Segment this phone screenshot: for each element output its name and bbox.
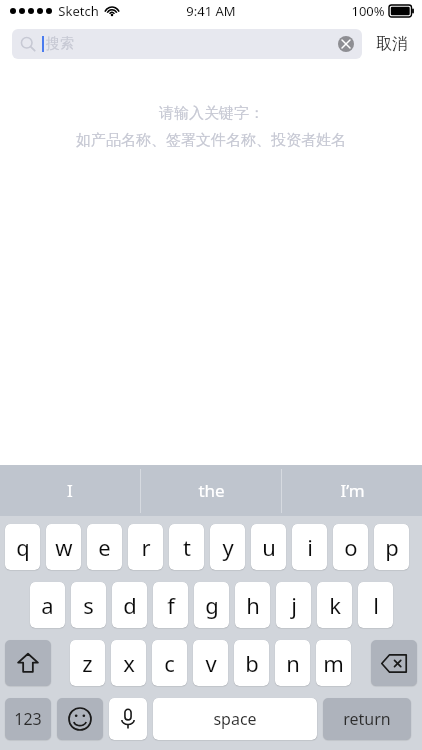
button[interactable]: m bbox=[316, 640, 351, 686]
button[interactable]: p bbox=[374, 524, 409, 570]
button[interactable]: Emoji bbox=[57, 698, 103, 740]
button[interactable]: v bbox=[193, 640, 228, 686]
staticText: n bbox=[286, 648, 300, 678]
staticText: i bbox=[307, 532, 313, 562]
staticText: j bbox=[291, 590, 297, 620]
button[interactable]: I bbox=[0, 465, 140, 516]
button[interactable]: l bbox=[358, 582, 393, 628]
button[interactable]: Clear bbox=[338, 36, 354, 52]
staticText: h bbox=[246, 590, 260, 620]
button[interactable]: Backspace bbox=[371, 640, 417, 686]
staticText: 123 bbox=[14, 708, 42, 730]
staticText: k bbox=[329, 590, 341, 620]
staticText: x bbox=[123, 648, 135, 678]
button[interactable]: o bbox=[333, 524, 368, 570]
staticText: 如产品名称、签署文件名称、投资者姓名 bbox=[76, 131, 346, 150]
button[interactable]: i bbox=[292, 524, 327, 570]
button[interactable]: g bbox=[194, 582, 229, 628]
staticText: r bbox=[141, 532, 151, 562]
button[interactable]: x bbox=[111, 640, 146, 686]
button[interactable]: the bbox=[141, 465, 281, 516]
button[interactable]: space bbox=[153, 698, 317, 740]
staticText: t bbox=[183, 532, 191, 562]
button[interactable]: k bbox=[317, 582, 352, 628]
staticText: e bbox=[98, 532, 111, 562]
staticText: u bbox=[262, 532, 276, 562]
staticText: m bbox=[323, 648, 344, 678]
button[interactable]: u bbox=[251, 524, 286, 570]
button[interactable]: b bbox=[234, 640, 269, 686]
staticText: the bbox=[198, 479, 225, 502]
staticText: c bbox=[164, 648, 175, 678]
button[interactable]: Dictation bbox=[109, 698, 147, 740]
staticText: o bbox=[344, 532, 358, 562]
staticText: v bbox=[205, 648, 217, 678]
button[interactable]: return bbox=[323, 698, 411, 740]
button[interactable]: s bbox=[71, 582, 106, 628]
staticText: space bbox=[213, 708, 257, 730]
button[interactable]: j bbox=[276, 582, 311, 628]
staticText: Sketch bbox=[58, 2, 99, 20]
staticText: y bbox=[222, 532, 234, 562]
button[interactable]: 123 bbox=[5, 698, 51, 740]
staticText: g bbox=[205, 590, 219, 620]
button[interactable]: c bbox=[152, 640, 187, 686]
button[interactable]: f bbox=[153, 582, 188, 628]
staticText: 搜索 bbox=[46, 35, 74, 53]
staticText: s bbox=[83, 590, 94, 620]
button[interactable]: w bbox=[46, 524, 81, 570]
button[interactable]: t bbox=[169, 524, 204, 570]
staticText: b bbox=[245, 648, 259, 678]
staticText: 取消 bbox=[376, 34, 408, 54]
button[interactable]: 搜索 bbox=[12, 29, 362, 59]
button[interactable]: h bbox=[235, 582, 270, 628]
button[interactable]: r bbox=[128, 524, 163, 570]
staticText: I bbox=[67, 479, 73, 502]
staticText: I’m bbox=[340, 479, 365, 502]
staticText: d bbox=[123, 590, 137, 620]
button[interactable]: a bbox=[30, 582, 65, 628]
button[interactable]: Shift bbox=[5, 640, 51, 686]
staticText: a bbox=[41, 590, 54, 620]
staticText: z bbox=[82, 648, 93, 678]
button[interactable]: q bbox=[5, 524, 40, 570]
button[interactable]: n bbox=[275, 640, 310, 686]
button[interactable]: y bbox=[210, 524, 245, 570]
button[interactable]: I’m bbox=[282, 465, 422, 516]
staticText: p bbox=[385, 532, 399, 562]
button[interactable]: z bbox=[70, 640, 105, 686]
button[interactable]: 取消 bbox=[374, 34, 410, 54]
staticText: 100% bbox=[351, 2, 385, 20]
staticText: f bbox=[167, 590, 175, 620]
staticText: 9:41 AM bbox=[186, 2, 236, 20]
button[interactable]: d bbox=[112, 582, 147, 628]
staticText: return bbox=[343, 708, 391, 730]
staticText: q bbox=[16, 532, 30, 562]
staticText: 请输入关键字： bbox=[159, 104, 264, 123]
button[interactable]: e bbox=[87, 524, 122, 570]
staticText: l bbox=[373, 590, 379, 620]
staticText: w bbox=[55, 532, 73, 562]
